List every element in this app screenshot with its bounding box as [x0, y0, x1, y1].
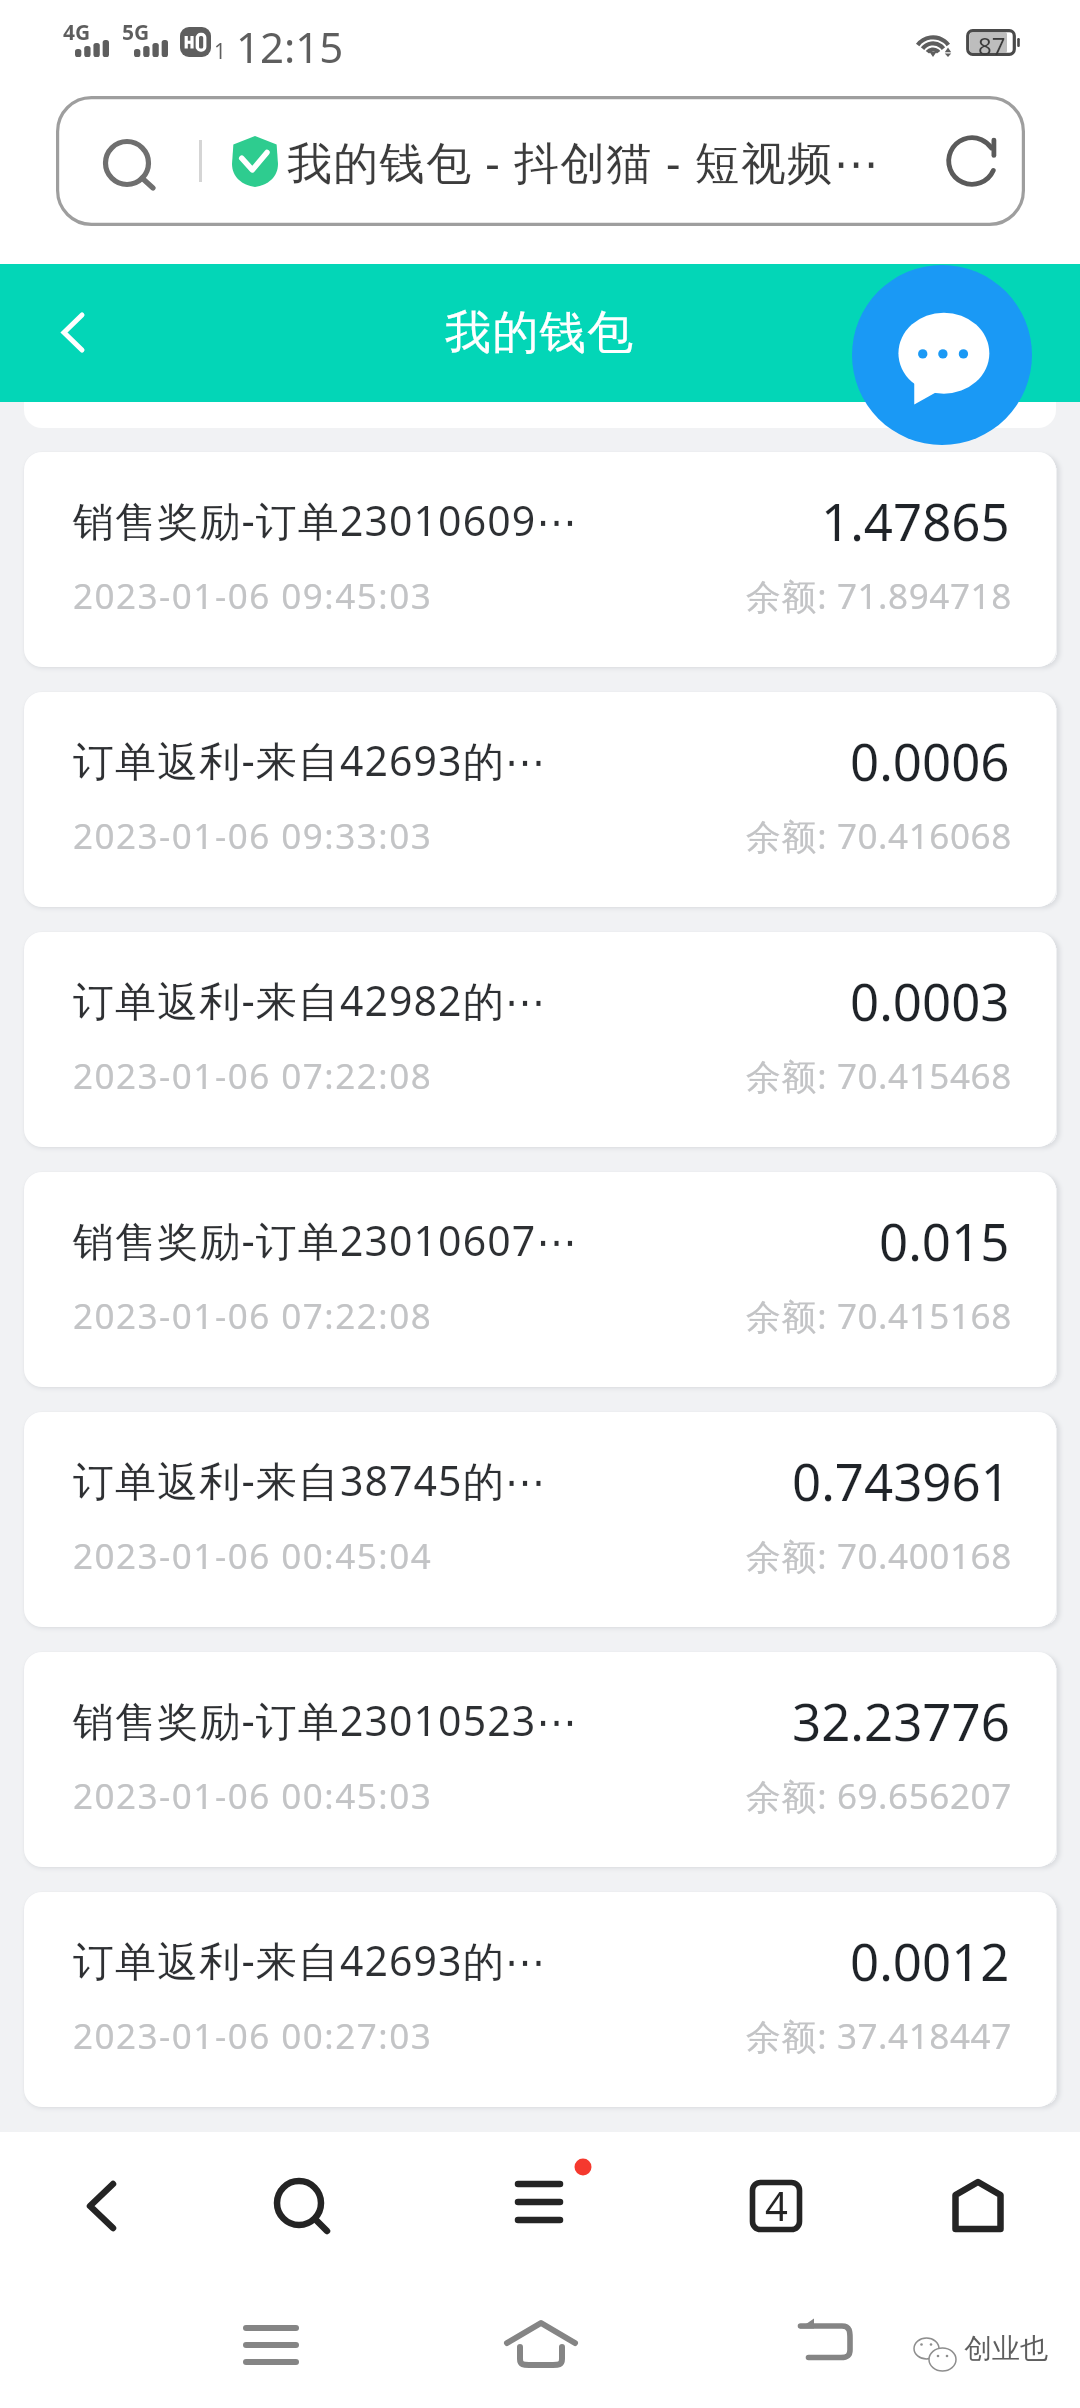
button[interactable]: Back — [762, 2285, 882, 2405]
staticText: 87 — [978, 29, 1006, 57]
staticText: 2023-01-06 09:33:03 — [73, 812, 433, 860]
staticText: 4G — [63, 18, 91, 47]
button[interactable]: 销售奖励-订单23010609⋯ — [24, 452, 1056, 667]
staticText: 销售奖励-订单23010523⋯ — [73, 1692, 713, 1748]
staticText: 我的钱包 - 抖创猫 - 短视频⋯ — [287, 131, 927, 192]
staticText: 订单返利-来自42693的⋯ — [73, 732, 713, 788]
staticText: 余额: 70.416068 — [746, 812, 1012, 860]
button[interactable]: Home — [918, 2146, 1038, 2264]
staticText: 12:15 — [236, 18, 344, 75]
staticText: 我的钱包 — [445, 304, 635, 362]
button[interactable]: Back — [41, 2146, 161, 2264]
staticText: 余额: 71.894718 — [746, 572, 1012, 620]
staticText: 2023-01-06 00:27:03 — [73, 2012, 433, 2060]
staticText: 5G — [122, 18, 150, 47]
staticText: 余额: 37.418447 — [746, 2012, 1012, 2060]
staticText: 订单返利-来自38745的⋯ — [73, 1452, 713, 1508]
button[interactable]: 订单返利-来自42693的⋯ — [24, 692, 1056, 907]
button[interactable]: Chat — [852, 265, 1032, 445]
staticText: 0.0006 — [850, 726, 1010, 795]
button[interactable]: Home — [481, 2285, 601, 2405]
staticText: 订单返利-来自42693的⋯ — [73, 1932, 713, 1988]
staticText: 2023-01-06 00:45:03 — [73, 1772, 433, 1820]
button[interactable]: Tabs — [716, 2146, 836, 2264]
staticText: 创业也 — [964, 2331, 1048, 2366]
staticText: 2023-01-06 07:22:08 — [73, 1052, 433, 1100]
button[interactable]: 订单返利-来自42693的⋯ — [24, 1892, 1056, 2107]
staticText: 余额: 70.415168 — [746, 1292, 1012, 1340]
button[interactable]: 订单返利-来自38745的⋯ — [24, 1412, 1056, 1627]
staticText: 2023-01-06 07:22:08 — [73, 1292, 433, 1340]
button[interactable]: Recents — [211, 2285, 331, 2405]
button[interactable]: Menu — [479, 2146, 599, 2264]
staticText: 0.743961 — [792, 1446, 1010, 1515]
button[interactable]: Search — [242, 2146, 362, 2264]
staticText: 2023-01-06 00:45:04 — [73, 1532, 433, 1580]
staticText: 1 — [214, 37, 227, 66]
button[interactable]: Back — [20, 278, 130, 388]
staticText: 余额: 69.656207 — [746, 1772, 1012, 1820]
button[interactable]: 订单返利-来自42982的⋯ — [24, 932, 1056, 1147]
button[interactable]: 我的钱包 - 抖创猫 - 短视频⋯ — [56, 96, 1025, 226]
button[interactable]: 销售奖励-订单23010607⋯ — [24, 1172, 1056, 1387]
staticText: 销售奖励-订单23010609⋯ — [73, 492, 713, 548]
button[interactable]: 销售奖励-订单23010523⋯ — [24, 1652, 1056, 1867]
button[interactable]: Refresh — [927, 116, 1017, 206]
staticText: 0.0003 — [850, 966, 1010, 1035]
staticText: 1.47865 — [821, 486, 1010, 555]
staticText: 余额: 70.400168 — [746, 1532, 1012, 1580]
staticText: 订单返利-来自42982的⋯ — [73, 972, 713, 1028]
staticText: 32.23776 — [792, 1686, 1010, 1755]
staticText: 余额: 70.415468 — [746, 1052, 1012, 1100]
staticText: 2023-01-06 09:45:03 — [73, 572, 433, 620]
staticText: 0.015 — [879, 1206, 1010, 1275]
staticText: 4 — [765, 2178, 788, 2232]
staticText: 0.0012 — [850, 1926, 1010, 1995]
staticText: 销售奖励-订单23010607⋯ — [73, 1212, 713, 1268]
